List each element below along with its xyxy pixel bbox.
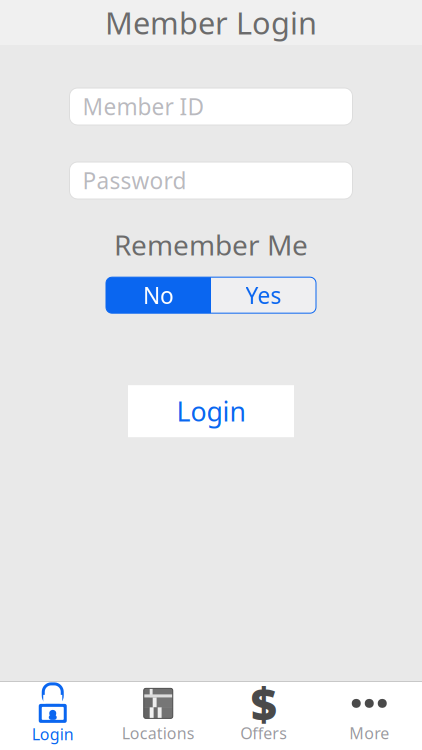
button[interactable]: Locations: [105, 685, 211, 747]
button[interactable]: Login: [0, 685, 105, 747]
button[interactable]: Login: [128, 385, 294, 437]
staticText: Member Login: [105, 2, 317, 43]
staticText: Member ID: [82, 91, 204, 121]
button[interactable]: No: [106, 277, 211, 313]
button[interactable]: More: [316, 685, 422, 747]
staticText: Login: [176, 393, 245, 429]
staticText: Login: [32, 723, 74, 745]
staticText: Yes: [245, 280, 281, 310]
staticText: Password: [82, 165, 186, 195]
button[interactable]: $: [211, 685, 316, 747]
staticText: Locations: [122, 722, 195, 744]
staticText: $: [251, 673, 277, 733]
button[interactable]: Yes: [211, 277, 316, 313]
staticText: Remember Me: [114, 226, 308, 263]
staticText: No: [143, 280, 174, 310]
staticText: More: [349, 722, 389, 744]
staticText: Offers: [240, 722, 287, 744]
